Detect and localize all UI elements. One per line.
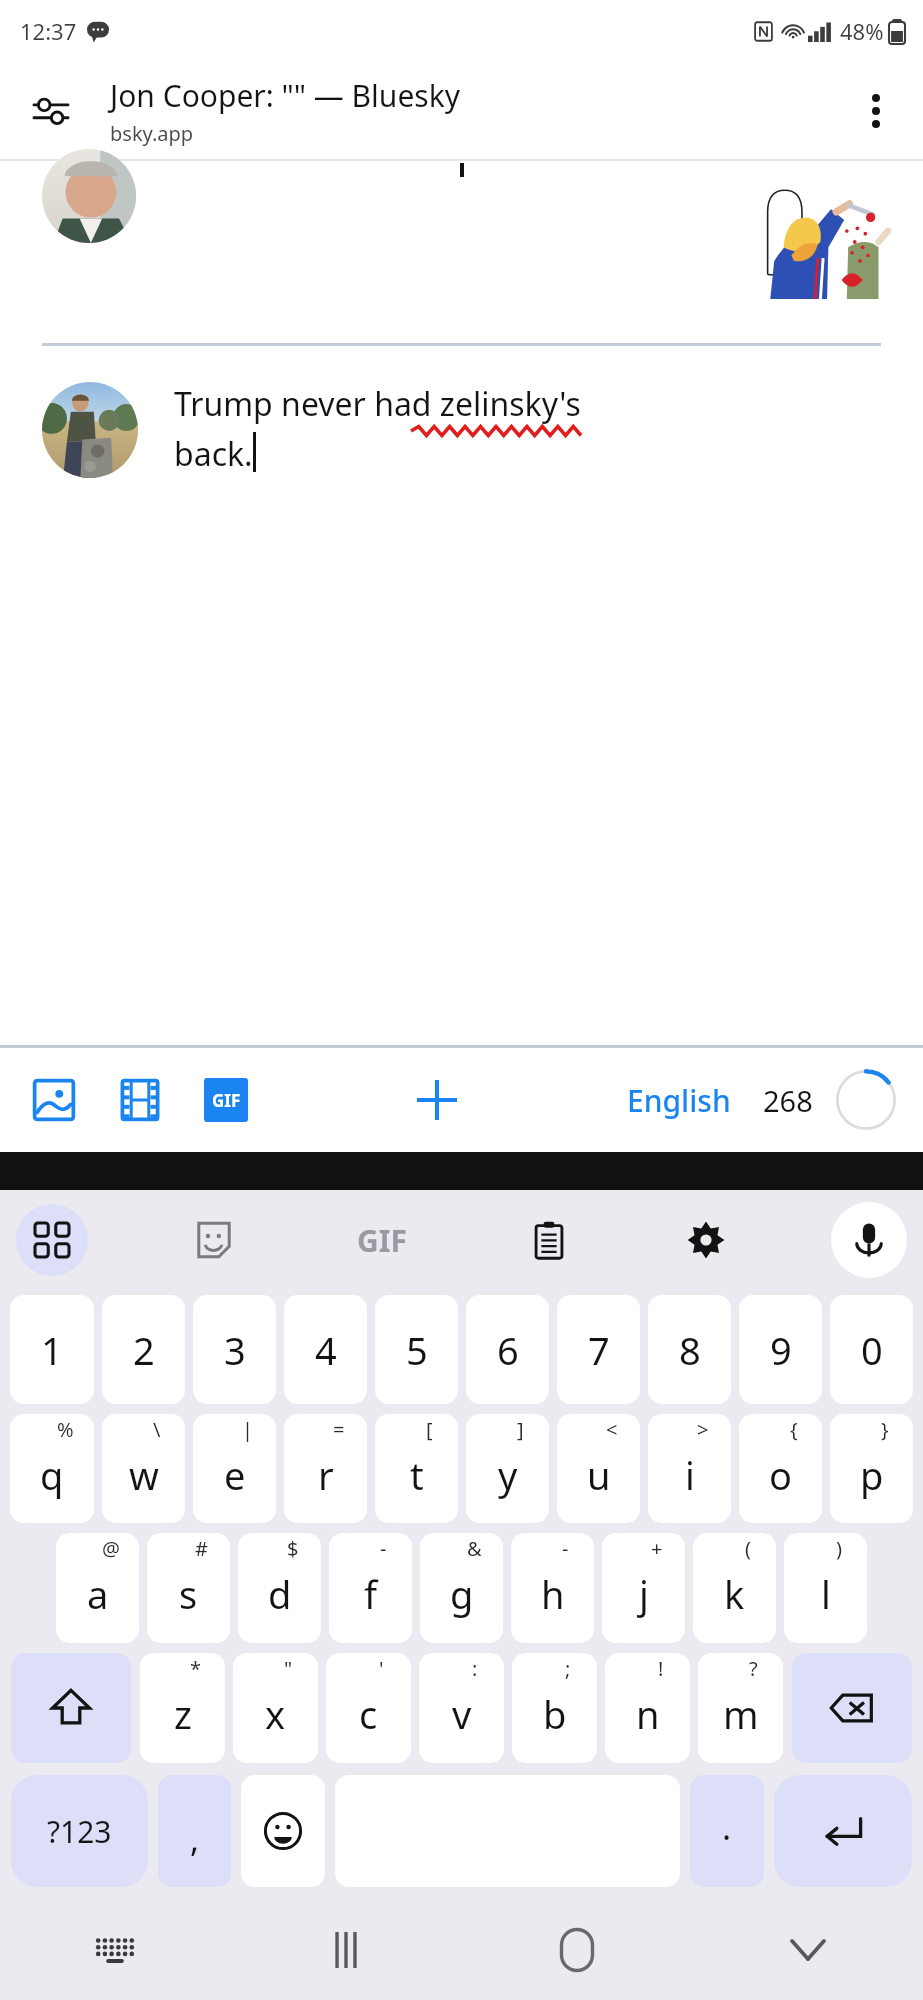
staticText: & [467,1535,482,1562]
button[interactable]: More options [843,78,909,144]
button[interactable]: ! [605,1653,690,1763]
button[interactable]: English [621,1074,737,1127]
button[interactable]: [ [375,1414,458,1523]
staticText: e [224,1449,246,1501]
button[interactable]: Add video [112,1072,168,1128]
button[interactable]: Recent apps [230,1900,461,2000]
staticText: j [639,1568,649,1620]
staticText: % [57,1416,74,1443]
staticText: * [190,1655,202,1682]
staticText: > [697,1416,709,1443]
button[interactable]: 4 [284,1295,367,1404]
staticText: + [651,1535,663,1562]
button[interactable]: { [739,1414,822,1523]
button[interactable]: Add [406,1069,468,1131]
button[interactable]: 6 [466,1295,549,1404]
button[interactable]: % [10,1414,94,1523]
button[interactable]: Backspace [792,1653,912,1763]
button[interactable]: # [147,1533,230,1643]
button[interactable]: | [193,1414,276,1523]
button[interactable]: 8 [648,1295,731,1404]
staticText: - [562,1535,569,1562]
button[interactable]: > [648,1414,731,1523]
button[interactable]: $ [238,1533,321,1643]
staticText: f [364,1568,378,1620]
staticText: \ [153,1416,161,1443]
staticText: bsky.app [110,120,194,147]
staticText: , [190,1816,200,1862]
button[interactable]: - [329,1533,412,1643]
button[interactable]: Stickers [182,1208,246,1272]
button[interactable]: Add image [26,1072,82,1128]
button[interactable]: Hide keyboard [0,1900,230,2000]
button[interactable]: Avatar [42,382,138,478]
staticText: ] [517,1416,524,1443]
button[interactable]: Home [461,1900,692,2000]
button[interactable]: Enter [774,1775,912,1887]
staticText: ; [565,1655,571,1682]
button[interactable]: < [557,1414,640,1523]
staticText: p [860,1449,884,1501]
button[interactable]: Post [835,1069,897,1131]
button[interactable]: 7 [557,1295,640,1404]
staticText: 4 [315,1324,337,1376]
button[interactable]: Settings [674,1208,738,1272]
staticText: " [284,1655,293,1682]
button[interactable]: - [511,1533,594,1643]
staticText: s [179,1568,198,1620]
staticText: i [685,1449,695,1501]
button[interactable]: Period [690,1775,764,1887]
button[interactable]: } [830,1414,913,1523]
button[interactable]: @ [56,1533,139,1643]
staticText: back. [174,432,253,476]
button[interactable]: ? [698,1653,783,1763]
button[interactable]: Add GIF [198,1072,254,1128]
button[interactable]: GIF [340,1208,424,1272]
button[interactable]: : [419,1653,504,1763]
staticText: d [268,1568,292,1620]
staticText: 0 [861,1324,883,1376]
button[interactable]: = [284,1414,367,1523]
button[interactable]: Emoji [241,1775,325,1887]
button[interactable]: ' [326,1653,411,1763]
staticText: GIF [212,1089,241,1112]
button[interactable]: Comma [158,1775,231,1887]
button[interactable]: Shift [11,1653,131,1763]
staticText: m [723,1688,759,1740]
button[interactable]: 5 [375,1295,458,1404]
button[interactable]: Site settings [18,78,84,144]
staticText: u [587,1449,611,1501]
staticText: b [543,1688,567,1740]
button[interactable]: * [140,1653,225,1763]
button[interactable]: & [420,1533,503,1643]
button[interactable]: 9 [739,1295,822,1404]
button[interactable]: Voice input [831,1202,907,1278]
button[interactable]: Avatar [42,149,136,243]
staticText: { [790,1416,798,1443]
button[interactable]: + [602,1533,685,1643]
staticText: English [627,1080,731,1121]
button[interactable]: Clipboard [517,1208,581,1272]
button[interactable]: Back [692,1900,923,2000]
button[interactable]: \ [102,1414,185,1523]
button[interactable]: 3 [193,1295,276,1404]
staticText: 2 [133,1324,155,1376]
button[interactable]: Keyboard modes [16,1204,88,1276]
button[interactable]: 1 [10,1295,94,1404]
staticText: w [129,1449,159,1501]
staticText: [ [426,1416,433,1443]
button[interactable]: ) [784,1533,867,1643]
staticText: 8 [679,1324,701,1376]
staticText: ?123 [47,1811,112,1852]
staticText: c [359,1688,378,1740]
button[interactable]: ?123 [11,1775,148,1887]
button[interactable]: 0 [830,1295,913,1404]
button[interactable]: 2 [102,1295,185,1404]
button[interactable]: ] [466,1414,549,1523]
button[interactable]: " [233,1653,318,1763]
button[interactable]: ; [512,1653,597,1763]
button[interactable]: ( [693,1533,776,1643]
staticText: ! [658,1655,664,1682]
staticText: Trump never had zelinsky's [174,382,581,426]
